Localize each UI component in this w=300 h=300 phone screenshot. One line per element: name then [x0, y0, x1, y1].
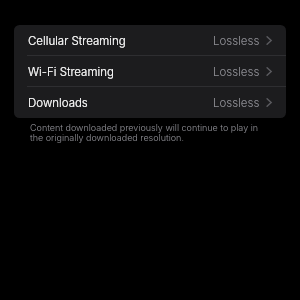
button[interactable]: Downloads: [14, 87, 286, 118]
staticText: Content downloaded previously will conti…: [30, 122, 259, 143]
other: Open: [266, 98, 272, 107]
button[interactable]: Cellular Streaming: [14, 25, 286, 56]
staticText: Lossless: [213, 96, 260, 110]
staticText: Wi-Fi Streaming: [28, 65, 114, 79]
other: Open: [266, 36, 272, 45]
button[interactable]: Wi-Fi Streaming: [14, 56, 286, 87]
other: Open: [266, 67, 272, 76]
staticText: Downloads: [28, 96, 88, 110]
staticText: Lossless: [213, 34, 260, 48]
staticText: Cellular Streaming: [28, 34, 126, 48]
staticText: Lossless: [213, 65, 260, 79]
